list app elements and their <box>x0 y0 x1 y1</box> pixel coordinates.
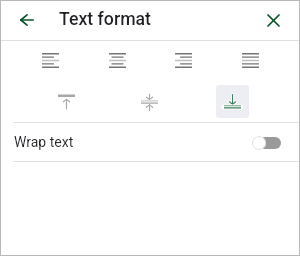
staticText: Wrap text <box>14 134 74 150</box>
staticText: Text format <box>59 9 151 30</box>
button[interactable]: Align right <box>166 43 200 77</box>
button[interactable]: Align bottom <box>216 85 249 118</box>
button[interactable]: Align middle <box>133 85 166 118</box>
button[interactable]: Wrap text <box>0 123 300 161</box>
button[interactable]: Wrap text <box>252 133 281 152</box>
button[interactable]: Back <box>11 4 43 36</box>
button[interactable]: Align center <box>100 43 134 77</box>
button[interactable]: Close <box>257 4 289 36</box>
button[interactable]: Justify <box>233 43 267 77</box>
button[interactable]: Align top <box>50 85 83 118</box>
button[interactable]: Align left <box>33 43 67 77</box>
